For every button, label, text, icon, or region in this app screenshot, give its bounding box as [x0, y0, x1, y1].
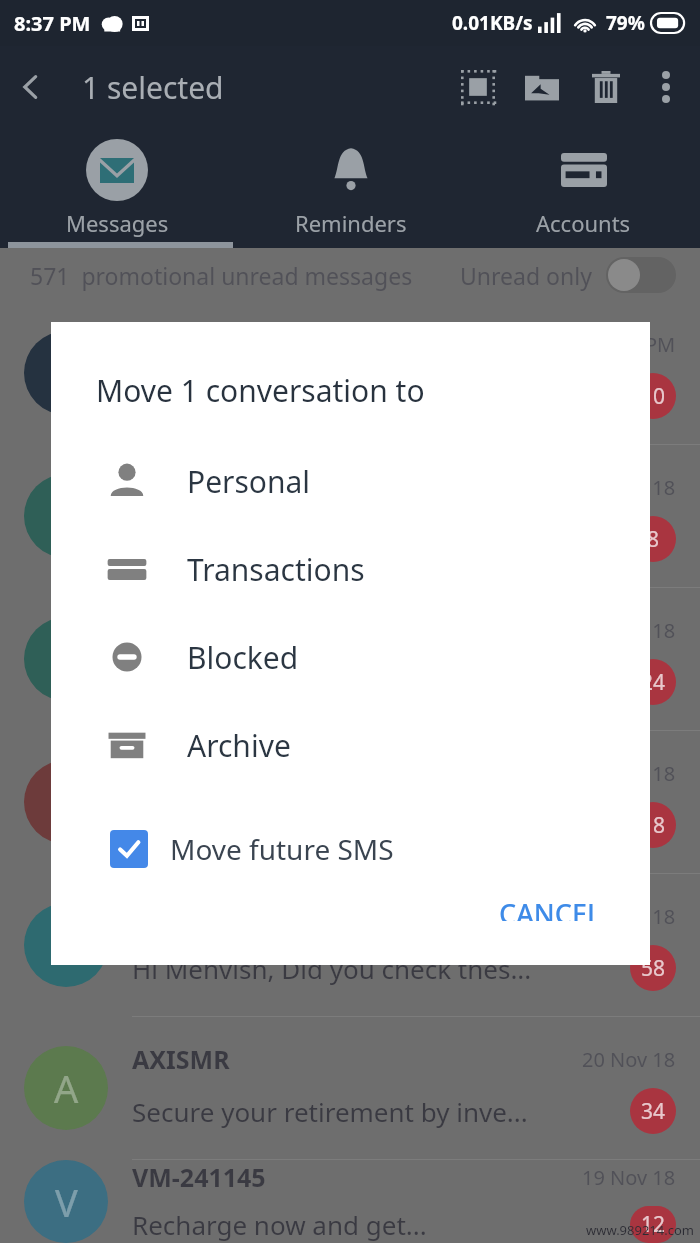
- staticText: 21 Nov 18: [582, 617, 676, 644]
- button[interactable]: V: [0, 302, 700, 445]
- staticText: Transactions: [187, 549, 365, 590]
- staticText: S: [56, 919, 77, 971]
- staticText: SM-FLIPKT: [132, 899, 582, 933]
- button[interactable]: Back: [0, 56, 62, 118]
- staticText: 12: [641, 1210, 666, 1239]
- staticText: V: [55, 1176, 78, 1228]
- button[interactable]: Reminders: [234, 128, 467, 248]
- staticText: Unread only: [460, 260, 592, 291]
- staticText: Personal: [187, 461, 311, 502]
- button[interactable]: Delete: [574, 55, 638, 119]
- staticText: 20 Nov 18: [582, 1046, 676, 1073]
- button[interactable]: A: [0, 1017, 700, 1160]
- staticText: 8:12 PM: [600, 331, 676, 358]
- staticText: 22 Nov 18: [582, 474, 676, 501]
- staticText: Blocked: [187, 637, 299, 678]
- button[interactable]: CANCEL: [485, 887, 616, 929]
- button[interactable]: V: [0, 1160, 700, 1243]
- staticText: Move 1 conversation to: [96, 370, 425, 411]
- staticText: AXISMR: [132, 1042, 582, 1076]
- button[interactable]: Unread only: [460, 257, 676, 293]
- staticText: 10: [641, 382, 666, 411]
- staticText: 20 Nov 18: [582, 903, 676, 930]
- button[interactable]: Move to folder: [510, 55, 574, 119]
- staticText: Reminders: [295, 208, 407, 238]
- staticText: 1 selected: [82, 67, 446, 108]
- staticText: Cashback offers just for...: [132, 808, 620, 843]
- staticText: Dear Customer, your acc...: [132, 379, 620, 414]
- staticText: www.989214.com: [586, 1221, 694, 1239]
- staticText: Hi Mehvish, Did you check thes...: [132, 951, 620, 986]
- button[interactable]: Personal: [51, 437, 650, 525]
- button[interactable]: I: [0, 445, 700, 588]
- staticText: 8:37 PM: [14, 10, 91, 37]
- button[interactable]: Accounts: [467, 128, 700, 248]
- button[interactable]: A: [0, 731, 700, 874]
- staticText: 34: [641, 1097, 666, 1126]
- staticText: Messages: [66, 208, 169, 238]
- staticText: 21 Nov 18: [582, 760, 676, 787]
- staticText: 0.01KB/s: [452, 10, 533, 36]
- staticText: 58: [641, 954, 666, 983]
- staticText: 24: [641, 668, 666, 697]
- staticText: Secure your retirement by inve...: [132, 1094, 620, 1129]
- button[interactable]: Archive: [51, 701, 650, 789]
- staticText: CANCEL: [499, 895, 602, 921]
- staticText: Accounts: [536, 208, 631, 238]
- button[interactable]: More options: [638, 59, 694, 115]
- staticText: VM-241145: [132, 1160, 582, 1194]
- button[interactable]: Move future SMS: [51, 811, 650, 887]
- staticText: 18: [641, 811, 666, 840]
- staticText: 8: [647, 525, 660, 554]
- staticText: Archive: [187, 725, 291, 766]
- button[interactable]: V: [0, 588, 700, 731]
- staticText: VK-SBIINB: [132, 613, 582, 647]
- button[interactable]: S: [0, 874, 700, 1017]
- button[interactable]: Select all: [446, 55, 510, 119]
- staticText: 19 Nov 18: [582, 1164, 676, 1191]
- staticText: A: [54, 1062, 79, 1114]
- staticText: Get instant personal loa...: [132, 665, 620, 700]
- staticText: AD-PAYTMB: [132, 756, 582, 790]
- staticText: Move future SMS: [170, 830, 394, 868]
- staticText: IM-ICICIB: [132, 470, 582, 504]
- staticText: Recharge now and get...: [132, 1207, 620, 1242]
- button[interactable]: Blocked: [51, 613, 650, 701]
- staticText: 79%: [606, 10, 645, 36]
- button[interactable]: Messages: [0, 128, 234, 248]
- button[interactable]: Transactions: [51, 525, 650, 613]
- staticText: 571 promotional unread messages: [30, 260, 413, 291]
